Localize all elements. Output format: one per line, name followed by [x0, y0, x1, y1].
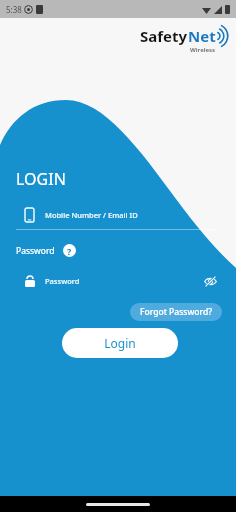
button[interactable]: Forgot Password? — [130, 303, 222, 321]
staticText: Wireless — [190, 46, 216, 54]
button[interactable]: Password help — [62, 243, 77, 258]
staticText: Net — [188, 26, 216, 46]
staticText: 5:38 — [6, 4, 22, 15]
staticText: Safety — [140, 26, 188, 46]
button[interactable]: Password — [16, 268, 220, 294]
staticText: Password — [16, 245, 55, 257]
button[interactable]: Mobile Number / Email ID — [16, 200, 220, 230]
staticText: Mobile Number / Email ID — [45, 210, 138, 220]
staticText: Forgot Password? — [140, 306, 212, 318]
staticText: ? — [67, 245, 72, 257]
button[interactable]: Login — [62, 328, 178, 358]
staticText: LOGIN — [16, 168, 66, 190]
staticText: Password — [45, 276, 80, 286]
button[interactable]: Show password — [200, 271, 220, 291]
staticText: Login — [104, 335, 136, 351]
